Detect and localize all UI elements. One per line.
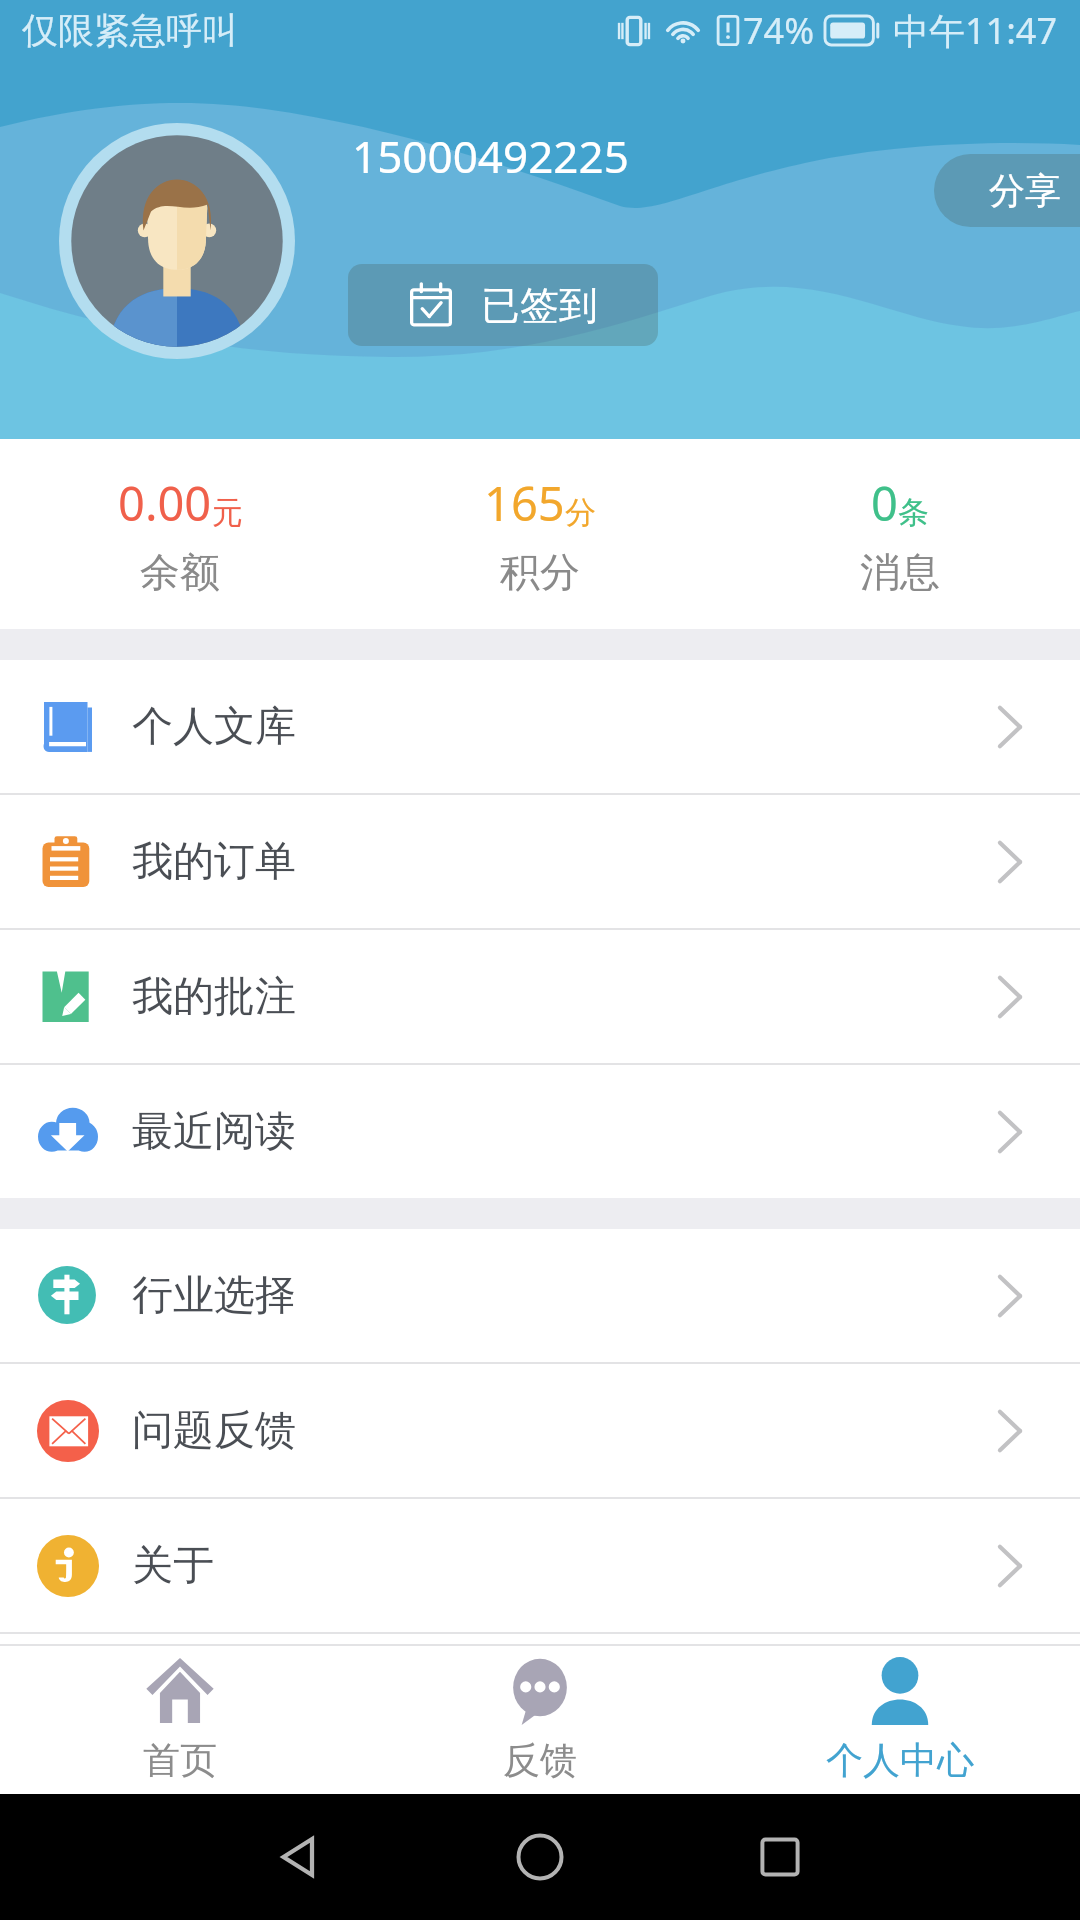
staticText: 0 — [871, 471, 898, 535]
button[interactable]: 165 — [360, 439, 720, 629]
staticText: 165 — [484, 471, 565, 535]
button[interactable]: 我的订单 — [0, 795, 1080, 928]
button[interactable]: 行业选择 — [0, 1229, 1080, 1362]
staticText: 首页 — [143, 1737, 217, 1784]
button[interactable]: 分享 — [934, 154, 1080, 227]
staticText: 74% — [743, 6, 815, 55]
staticText: 我的订单 — [132, 836, 296, 888]
button[interactable]: 我的批注 — [0, 930, 1080, 1063]
staticText: 分 — [565, 493, 596, 532]
button[interactable]: 关于 — [0, 1499, 1080, 1632]
staticText: 关于 — [132, 1540, 214, 1592]
button[interactable]: 问题反馈 — [0, 1364, 1080, 1497]
button[interactable]: 个人中心 — [720, 1646, 1080, 1794]
button[interactable]: 0.00 — [0, 439, 360, 629]
staticText: 余额 — [140, 547, 220, 597]
staticText: 问题反馈 — [132, 1405, 296, 1457]
staticText: 15000492225 — [352, 126, 629, 186]
staticText: 个人中心 — [826, 1737, 974, 1784]
button[interactable]: Home — [480, 1797, 600, 1917]
staticText: 我的批注 — [132, 971, 296, 1023]
staticText: 已签到 — [481, 281, 598, 330]
button[interactable]: 0 — [720, 439, 1080, 629]
staticText: 中午11:47 — [893, 6, 1058, 55]
staticText: 积分 — [500, 547, 580, 597]
staticText: 仅限紧急呼叫 — [22, 8, 238, 53]
staticText: 分享 — [989, 168, 1061, 213]
staticText: 条 — [898, 493, 929, 532]
button[interactable]: Back — [240, 1797, 360, 1917]
button[interactable]: 个人文库 — [0, 660, 1080, 793]
staticText: 个人文库 — [132, 701, 296, 753]
staticText: 反馈 — [503, 1737, 577, 1784]
staticText: 最近阅读 — [132, 1106, 296, 1158]
button[interactable]: Recents — [720, 1797, 840, 1917]
button[interactable]: 已签到 — [348, 264, 658, 346]
staticText: 消息 — [860, 547, 940, 597]
staticText: 0.00 — [118, 471, 212, 535]
button[interactable]: 最近阅读 — [0, 1065, 1080, 1198]
button[interactable]: 首页 — [0, 1646, 360, 1794]
staticText: 行业选择 — [132, 1270, 296, 1322]
button[interactable]: Profile photo — [59, 123, 295, 359]
staticText: 元 — [212, 493, 243, 532]
button[interactable]: 反馈 — [360, 1646, 720, 1794]
